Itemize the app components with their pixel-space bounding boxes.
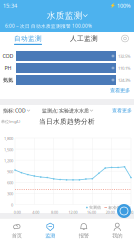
staticText: PH	[4, 64, 11, 72]
staticText: 8:00	[51, 210, 58, 215]
button[interactable]: 人工监测	[56, 32, 112, 45]
staticText: 我的	[112, 232, 122, 239]
staticText: 1,500	[4, 147, 13, 152]
button[interactable]: 监测点: 实验进水水质	[42, 107, 93, 114]
staticText: 16:00	[87, 210, 96, 215]
staticText: 报警	[79, 232, 89, 239]
staticText: COD	[2, 52, 13, 60]
staticText: 自动监测	[14, 34, 42, 43]
staticText: 0:00	[14, 210, 21, 215]
button[interactable]: 刷新	[116, 203, 132, 219]
staticText: 300	[7, 191, 13, 196]
staticText: 900	[7, 169, 13, 174]
staticText: 监测点: 实验进水水质	[42, 107, 89, 114]
staticText: 1,200	[4, 158, 13, 163]
staticText: 24:00	[124, 210, 133, 215]
staticText: 0	[11, 202, 13, 207]
button[interactable]: 报警	[67, 218, 100, 240]
staticText: 实测值	[89, 205, 101, 210]
button[interactable]: 首页	[0, 218, 33, 240]
staticText: 4:00	[32, 210, 39, 215]
staticText: 查看更多	[110, 87, 130, 94]
staticText: 标准值(上限)	[108, 205, 130, 210]
button[interactable]: 设置	[121, 34, 134, 42]
staticText: 人工监测	[70, 34, 98, 43]
staticText: ⚡	[110, 3, 116, 8]
button[interactable]: 指标: COD	[3, 107, 30, 114]
staticText: 指标: COD	[3, 107, 26, 114]
staticText: 单位(mg/L)	[1, 119, 20, 124]
staticText: 6:00 ~ 次日 自动水质监测报警 100.00%	[5, 23, 92, 29]
staticText: 12:00	[68, 210, 77, 215]
staticText: 100%	[117, 2, 131, 9]
button[interactable]: 查看更多	[110, 87, 134, 94]
button[interactable]: 自动监测	[0, 32, 56, 45]
staticText: 124.3%	[118, 77, 131, 83]
button[interactable]: 监测	[33, 218, 67, 240]
staticText: 1,800	[4, 136, 13, 141]
staticText: 110.1%	[118, 65, 131, 71]
button[interactable]: 我的	[100, 218, 134, 240]
staticText: 15:34	[3, 2, 17, 9]
staticText: 当日水质趋势分析	[39, 117, 95, 126]
staticText: 查看更多	[112, 107, 132, 114]
staticText: 水质监测	[47, 10, 83, 21]
staticText: 132.5%	[118, 53, 131, 59]
staticText: 监测	[45, 232, 55, 239]
button[interactable]: 查看更多	[112, 107, 132, 114]
staticText: 首页	[12, 232, 22, 239]
staticText: 20:00	[106, 210, 115, 215]
staticText: 氨氮	[3, 77, 13, 83]
staticText: 600	[7, 180, 13, 185]
